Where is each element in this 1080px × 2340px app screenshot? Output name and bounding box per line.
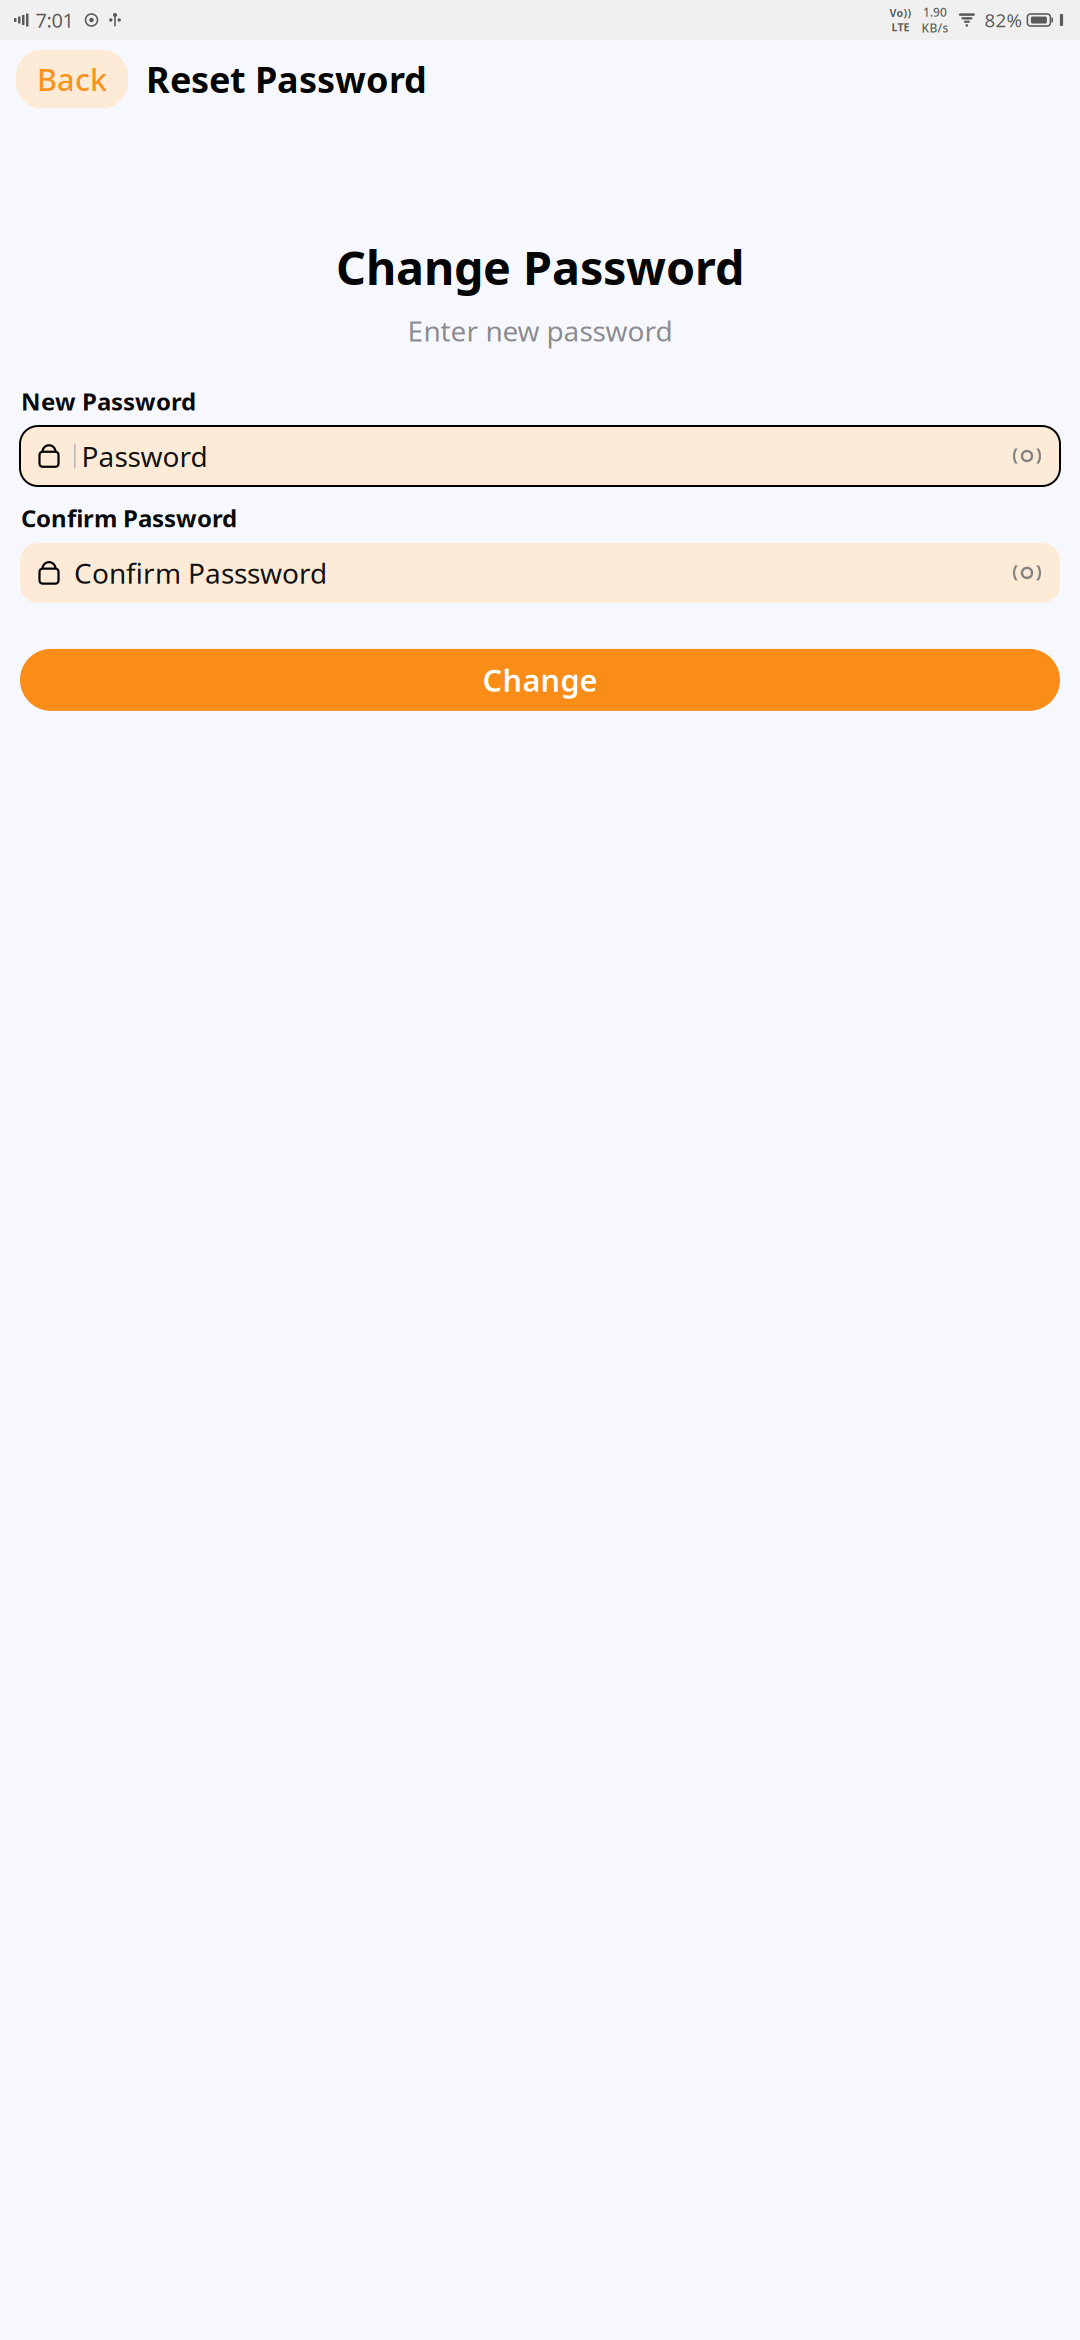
staticText: KB/s bbox=[921, 20, 948, 36]
staticText: 82% bbox=[984, 8, 1022, 32]
staticText: Confirm Password bbox=[21, 502, 237, 534]
button[interactable]: Back bbox=[16, 50, 128, 108]
staticText: Back bbox=[37, 59, 107, 99]
staticText: 1.90 bbox=[923, 4, 947, 20]
staticText: New Password bbox=[21, 385, 196, 417]
staticText: Confirm Passsword bbox=[74, 554, 327, 591]
staticText: Reset Password bbox=[146, 55, 427, 103]
staticText: Password bbox=[82, 437, 208, 475]
button[interactable]: Confirm Passsword bbox=[20, 543, 1060, 603]
staticText: Enter new password bbox=[407, 312, 672, 349]
staticText: 7:01 bbox=[35, 7, 73, 33]
button[interactable]: Change bbox=[20, 649, 1060, 711]
staticText: Change Password bbox=[336, 236, 744, 298]
button[interactable]: Password bbox=[20, 426, 1060, 486]
staticText: Vo)) bbox=[889, 6, 911, 20]
staticText: LTE bbox=[891, 20, 909, 34]
staticText: Change bbox=[482, 659, 597, 700]
